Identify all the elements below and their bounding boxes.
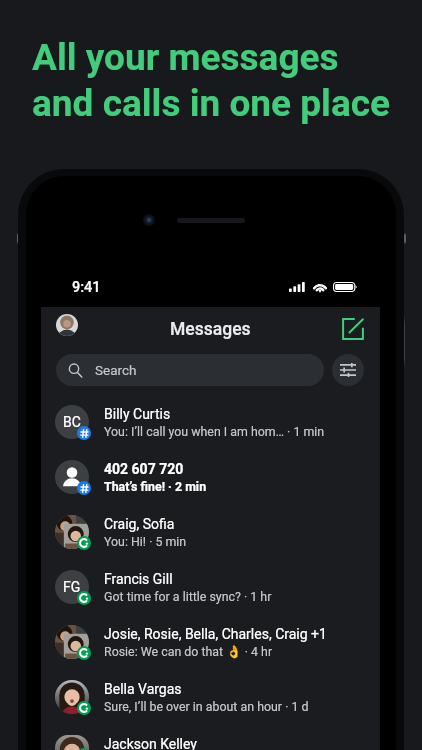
staticText: Messages — [170, 319, 251, 340]
button[interactable]: Craig, Sofia — [41, 504, 380, 559]
staticText: Rosie: We can do that 👌 · 4 hr — [104, 644, 273, 659]
staticText: You: I’ll call you when I am hom… · 1 mi… — [104, 424, 325, 439]
staticText: BC — [63, 414, 81, 430]
button[interactable]: Josie, Rosie, Bella, Charles, Craig +1 — [41, 614, 380, 669]
staticText: 402 607 720 — [104, 461, 184, 477]
staticText: Billy Curtis — [104, 406, 171, 422]
staticText: Jackson Kelley — [104, 736, 197, 750]
staticText: Sure, I’ll be over in about an hour · 1 … — [104, 699, 309, 714]
staticText: Francis Gill — [104, 571, 173, 587]
staticText: Josie, Rosie, Bella, Charles, Craig +1 — [104, 626, 327, 642]
staticText: FG — [63, 579, 81, 595]
staticText: Bella Vargas — [104, 681, 182, 697]
staticText: Got time for a little sync? · 1 hr — [104, 589, 272, 604]
button[interactable]: FG — [41, 559, 380, 614]
button[interactable]: Jackson Kelley — [41, 724, 380, 750]
button[interactable]: Filter conversations — [332, 354, 364, 386]
staticText: All your messages and calls in one place — [32, 36, 391, 125]
staticText: That’s fine! · 2 min — [104, 479, 207, 494]
button[interactable]: Compose new message — [339, 315, 367, 343]
button[interactable]: Account — [56, 314, 78, 336]
staticText: Search — [95, 362, 137, 378]
staticText: Craig, Sofia — [104, 516, 175, 532]
button[interactable]: Bella Vargas — [41, 669, 380, 724]
button[interactable]: BC — [41, 394, 380, 449]
staticText: 9:41 — [72, 279, 101, 296]
button[interactable]: 402 607 720 — [41, 449, 380, 504]
staticText: You: Hi! · 5 min — [104, 534, 187, 549]
button[interactable]: Search — [56, 354, 324, 386]
